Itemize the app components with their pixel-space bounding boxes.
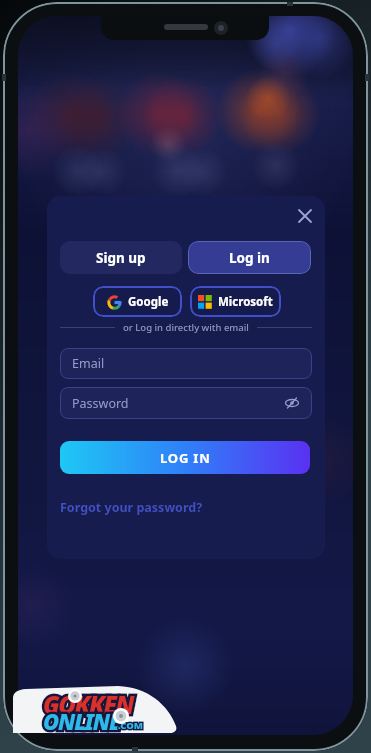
button[interactable]: Email: [60, 348, 312, 379]
staticText: ONLINE: [43, 706, 121, 736]
staticText: LOG IN: [160, 449, 211, 467]
button[interactable]: Password: [60, 387, 312, 419]
button[interactable]: Google: [93, 286, 182, 317]
staticText: Google: [128, 294, 169, 310]
staticText: Sign up: [96, 249, 146, 267]
button[interactable]: LOG IN: [60, 441, 310, 474]
button[interactable]: [298, 209, 312, 223]
staticText: Microsoft: [218, 294, 273, 310]
button[interactable]: Log in: [188, 241, 311, 274]
staticText: Log in: [229, 249, 270, 267]
staticText: GOKKEN: [43, 688, 133, 721]
button[interactable]: Microsoft: [190, 286, 281, 317]
staticText: Password: [72, 395, 129, 412]
staticText: ONLINE: [43, 706, 121, 736]
button[interactable]: Sign up: [60, 241, 182, 274]
staticText: .COM: [118, 719, 144, 732]
staticText: or Log in directly with email: [123, 321, 249, 334]
staticText: Email: [72, 355, 105, 372]
staticText: GOKKEN: [43, 688, 133, 721]
staticText: .COM: [118, 719, 144, 732]
button[interactable]: Forgot your password?: [60, 499, 203, 516]
